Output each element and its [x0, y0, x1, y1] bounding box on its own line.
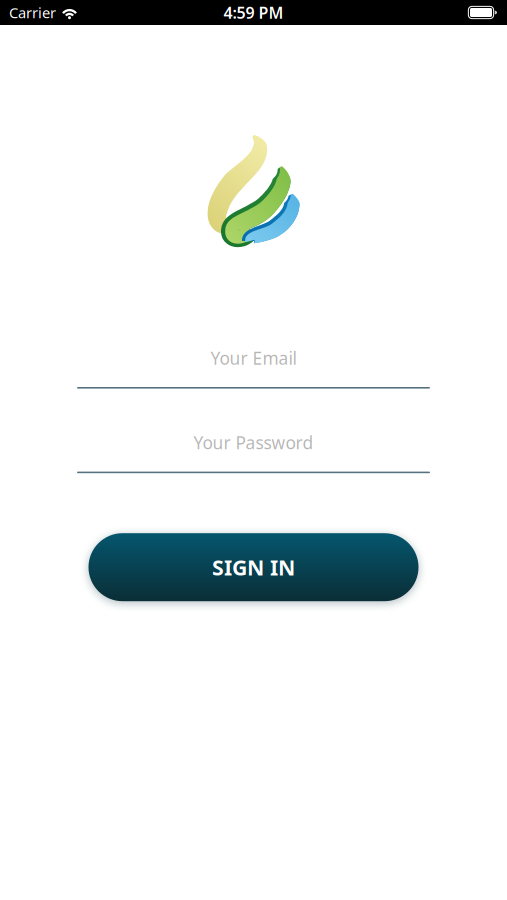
button[interactable]: SIGN IN — [88, 533, 418, 601]
staticText: 4:59 PM — [223, 2, 283, 23]
button[interactable]: Your Email — [77, 347, 430, 389]
button[interactable]: Your Password — [77, 432, 430, 473]
staticText: Your Password — [193, 431, 313, 454]
staticText: Carrier — [9, 3, 56, 22]
staticText: SIGN IN — [212, 553, 295, 581]
staticText: Your Email — [210, 346, 296, 369]
